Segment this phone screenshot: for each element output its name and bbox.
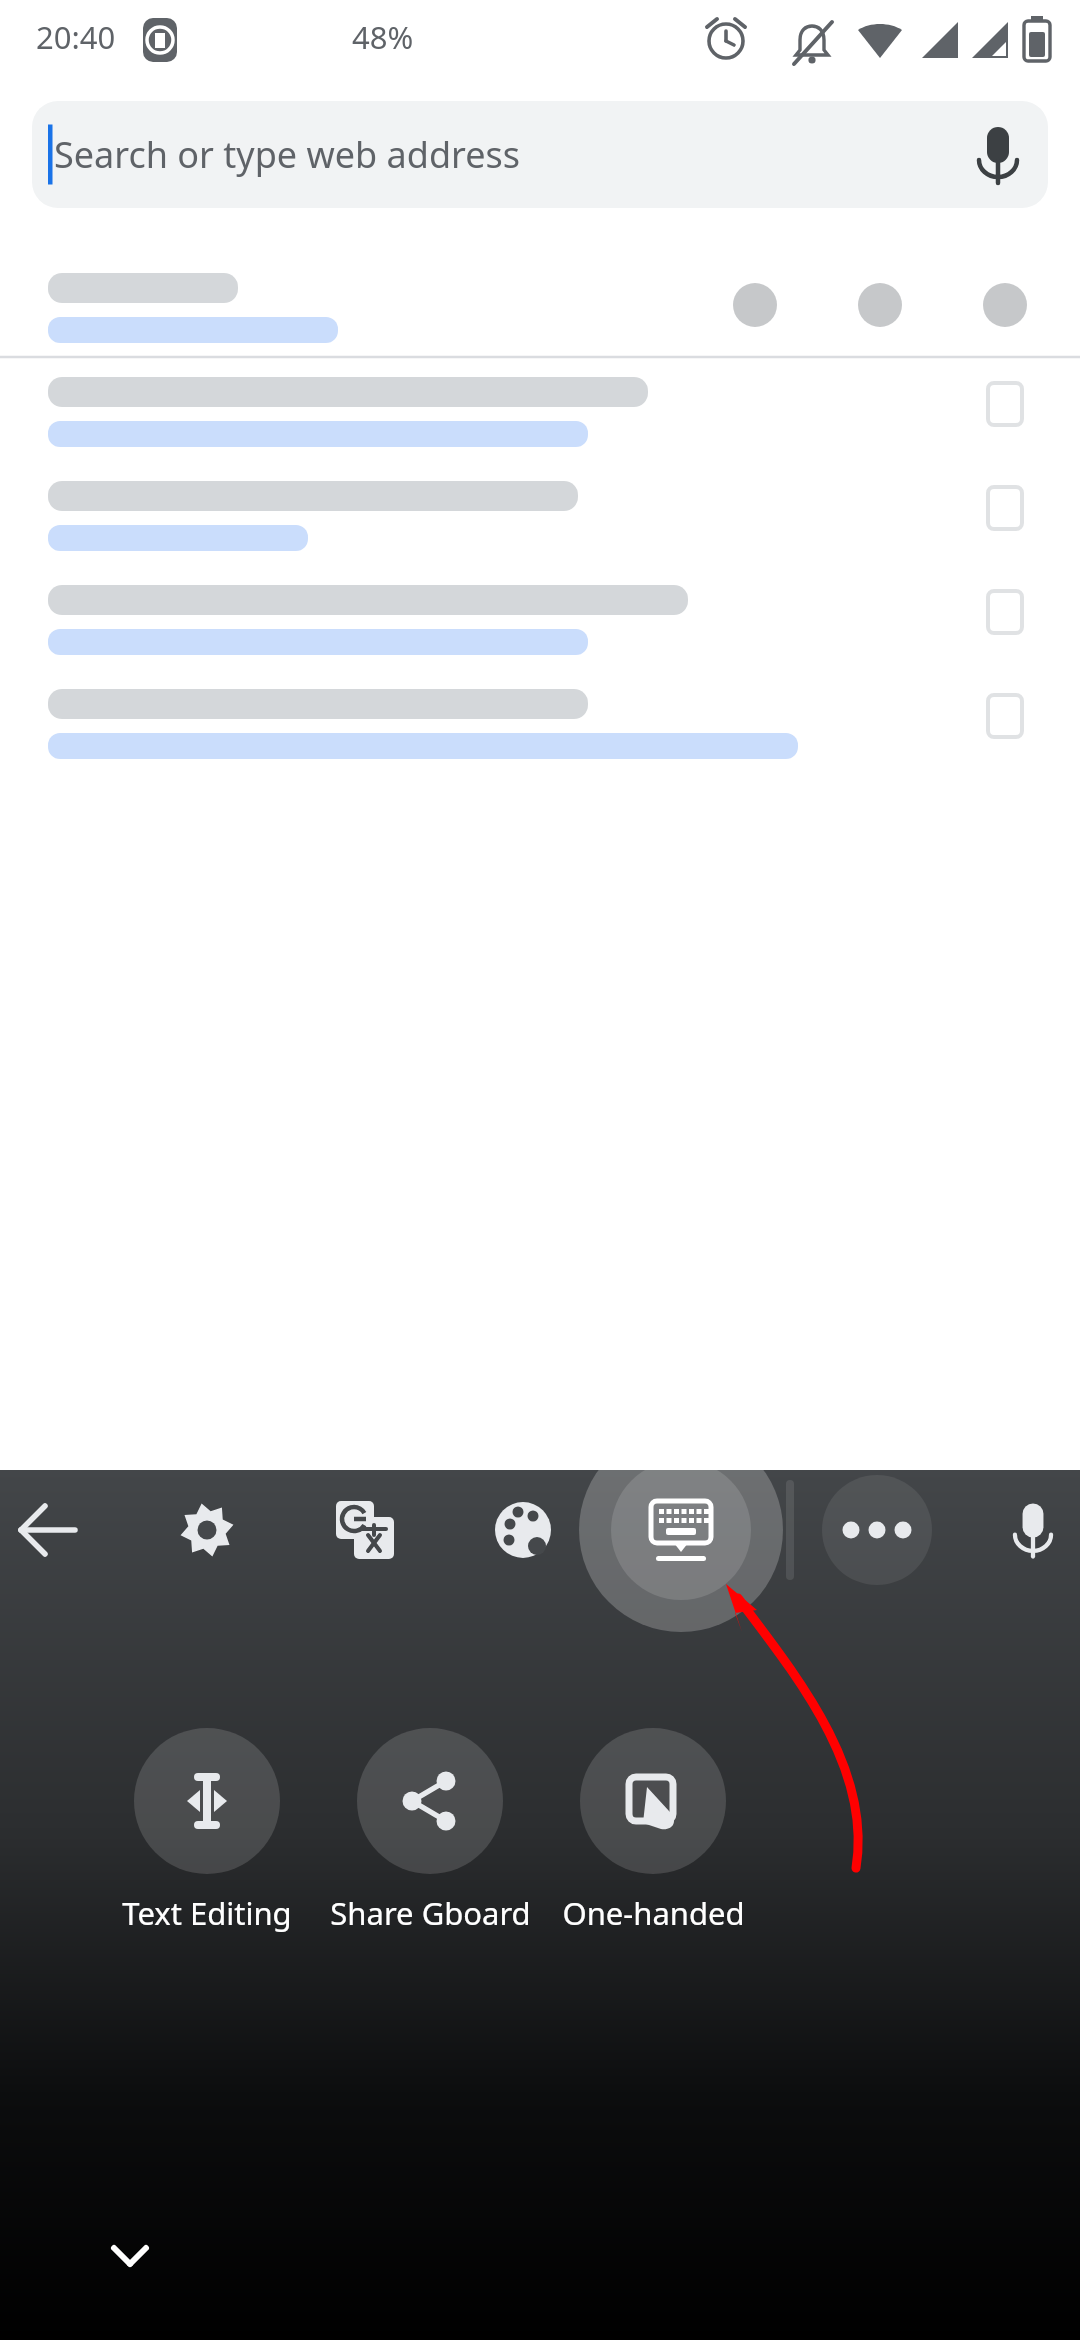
button[interactable]: One-handed — [543, 1728, 763, 1934]
staticText: 48% — [352, 16, 414, 58]
button[interactable]: Back — [0, 1475, 103, 1585]
staticText: One-handed — [562, 1892, 745, 1934]
button[interactable]: More options — [822, 1475, 932, 1585]
button[interactable]: Settings — [152, 1475, 262, 1585]
staticText: 20:40 — [36, 16, 116, 58]
staticText: Share Gboard — [330, 1892, 531, 1934]
button[interactable]: Voice input — [978, 1475, 1080, 1585]
button[interactable]: Text Editing — [97, 1728, 317, 1934]
staticText: Search or type web address — [54, 130, 520, 179]
button[interactable]: Voice search — [958, 115, 1038, 195]
button[interactable]: Share Gboard — [320, 1728, 540, 1934]
button[interactable]: Search or type web address — [32, 101, 1048, 208]
button[interactable]: Hide keyboard — [88, 2214, 172, 2298]
button[interactable]: Themes — [468, 1475, 578, 1585]
button[interactable]: Keyboard layout — [626, 1475, 736, 1585]
staticText: Text Editing — [122, 1892, 292, 1934]
button[interactable]: Translate — [310, 1475, 420, 1585]
